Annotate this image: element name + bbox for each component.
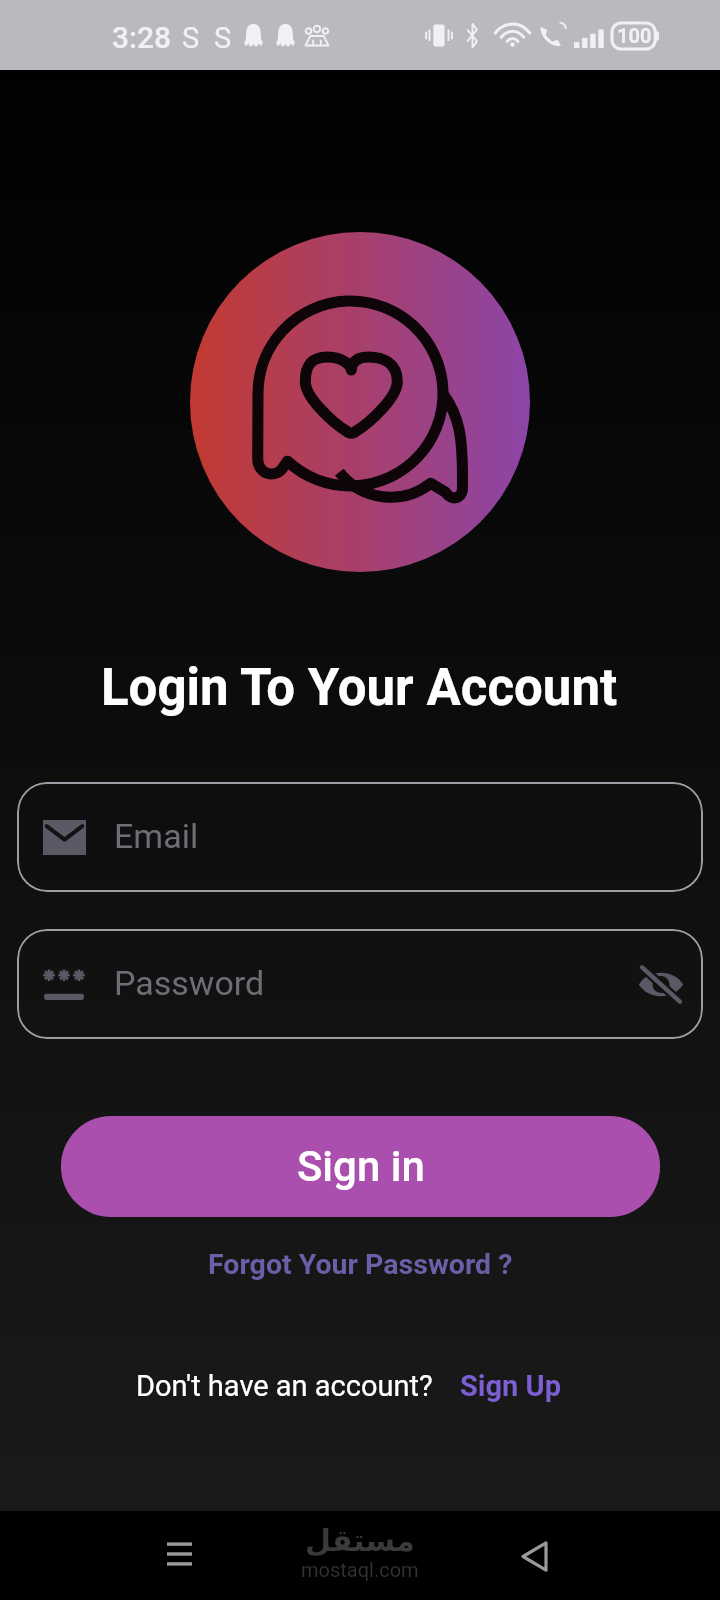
staticText: 100 bbox=[617, 24, 652, 47]
staticText: Sign in bbox=[297, 1142, 425, 1191]
button[interactable]: Recent apps bbox=[144, 1519, 214, 1589]
staticText: mostaql.com bbox=[301, 1558, 419, 1581]
staticText: Don't have an account? bbox=[136, 1369, 433, 1403]
button[interactable]: Show password bbox=[629, 952, 693, 1016]
button[interactable]: Email bbox=[17, 782, 703, 892]
staticText: S bbox=[214, 21, 232, 55]
staticText: Forgot Your Password ? bbox=[208, 1248, 513, 1281]
staticText: Email bbox=[114, 816, 199, 856]
staticText: Password bbox=[114, 963, 265, 1003]
button[interactable]: Forgot Your Password ? bbox=[194, 1240, 527, 1289]
button[interactable]: Password bbox=[17, 929, 703, 1039]
staticText: 3:28 bbox=[112, 20, 172, 55]
button[interactable]: Sign Up bbox=[460, 1369, 561, 1403]
staticText: S bbox=[182, 21, 200, 55]
staticText: Login To Your Account bbox=[101, 658, 618, 718]
button[interactable]: Sign in bbox=[61, 1116, 660, 1217]
staticText: Sign Up bbox=[460, 1369, 561, 1403]
button[interactable]: Back bbox=[499, 1521, 569, 1591]
staticText: مستقل bbox=[305, 1523, 415, 1558]
